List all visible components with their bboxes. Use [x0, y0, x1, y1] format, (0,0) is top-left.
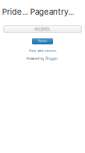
- button[interactable]: View web version: [0, 49, 85, 53]
- staticText: Pride... Pageantry...: [2, 7, 74, 17]
- staticText: View web version: [28, 49, 56, 53]
- staticText: Powered by: [26, 57, 44, 60]
- staticText: Home: [38, 39, 47, 43]
- staticText: Blogger.: [45, 57, 58, 60]
- staticText: No posts.: [34, 27, 50, 31]
- button[interactable]: Powered by: [0, 57, 85, 60]
- button[interactable]: Home: [32, 38, 53, 44]
